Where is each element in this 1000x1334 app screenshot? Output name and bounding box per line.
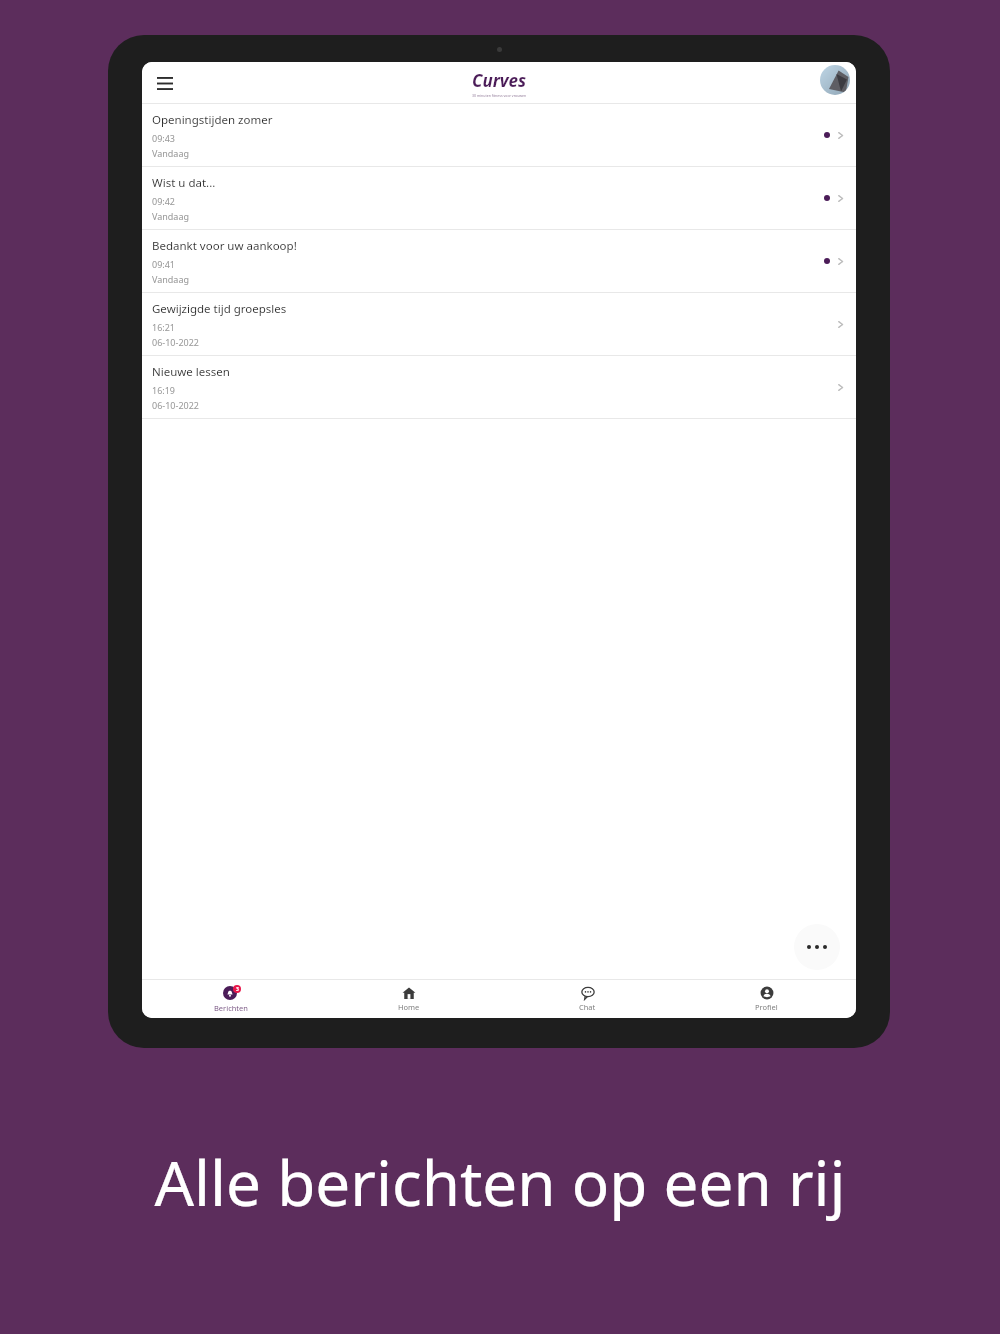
- staticText: Home: [398, 1002, 420, 1012]
- button[interactable]: Chat: [498, 980, 677, 1018]
- staticText: 3: [236, 986, 239, 993]
- staticText: Vandaag: [152, 210, 189, 222]
- staticText: 09:42: [152, 195, 176, 207]
- button[interactable]: Menu: [148, 66, 182, 100]
- staticText: 30 minuten fitness voor vrouwen: [472, 93, 527, 98]
- button[interactable]: 3: [142, 980, 320, 1018]
- button[interactable]: Openingstijden zomer: [142, 104, 856, 166]
- staticText: Berichten: [214, 1003, 248, 1013]
- staticText: Vandaag: [152, 273, 189, 285]
- staticText: 06-10-2022: [152, 399, 199, 411]
- staticText: Chat: [579, 1002, 596, 1012]
- button[interactable]: Home: [320, 980, 498, 1018]
- button[interactable]: Profiel: [677, 980, 856, 1018]
- staticText: Profiel: [755, 1002, 778, 1012]
- staticText: 16:19: [152, 384, 176, 396]
- button[interactable]: Meer opties: [794, 924, 840, 970]
- staticText: Vandaag: [152, 147, 189, 159]
- staticText: 06-10-2022: [152, 336, 199, 348]
- staticText: 16:21: [152, 321, 176, 333]
- button[interactable]: Gewijzigde tijd groepsles: [142, 293, 856, 355]
- staticText: Alle berichten op een rij: [0, 1140, 1000, 1224]
- staticText: Curves: [472, 69, 527, 92]
- staticText: Bedankt voor uw aankoop!: [152, 238, 297, 254]
- button[interactable]: Wist u dat...: [142, 167, 856, 229]
- staticText: 09:43: [152, 132, 176, 144]
- staticText: Wist u dat...: [152, 175, 216, 191]
- staticText: Openingstijden zomer: [152, 112, 273, 128]
- button[interactable]: Profielfoto: [820, 65, 850, 95]
- staticText: Nieuwe lessen: [152, 364, 230, 380]
- staticText: 09:41: [152, 258, 176, 270]
- staticText: Gewijzigde tijd groepsles: [152, 301, 287, 317]
- button[interactable]: Nieuwe lessen: [142, 356, 856, 418]
- button[interactable]: Bedankt voor uw aankoop!: [142, 230, 856, 292]
